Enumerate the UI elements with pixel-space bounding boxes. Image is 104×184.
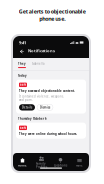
staticText: Home xyxy=(18,164,27,167)
staticText: Details xyxy=(22,106,32,109)
staticText: Locations xyxy=(54,164,67,167)
button[interactable]: Gabriella xyxy=(26,62,44,65)
staticText: Notifications xyxy=(28,48,55,53)
button[interactable]: They xyxy=(18,62,26,68)
staticText: Family Profiles xyxy=(36,162,47,169)
staticText: Dismiss xyxy=(40,106,50,109)
staticText: Get alerts to objectionable phone use. xyxy=(18,8,85,22)
staticText: They were online during school hours. xyxy=(19,132,77,136)
staticText: bark xyxy=(19,83,26,87)
button[interactable]: Details xyxy=(19,104,35,110)
button[interactable]: Locations xyxy=(51,158,70,167)
button[interactable]: Home xyxy=(13,158,32,167)
staticText: Thursday October 6 xyxy=(18,117,47,121)
staticText: 9:41 xyxy=(19,40,26,45)
staticText: They xyxy=(18,62,26,65)
button[interactable]: Back xyxy=(17,47,26,56)
staticText: Gabriella xyxy=(32,62,44,65)
button[interactable]: Family Profiles xyxy=(32,156,51,169)
staticText: They accessed objectionable content. xyxy=(19,89,75,93)
staticText: Today xyxy=(18,74,27,77)
button[interactable]: Dismiss xyxy=(37,104,53,110)
staticText: It contained violence, weapons, and porn… xyxy=(19,95,64,102)
button[interactable]: More xyxy=(70,158,89,167)
staticText: More xyxy=(76,164,83,167)
staticText: bark xyxy=(19,126,26,130)
